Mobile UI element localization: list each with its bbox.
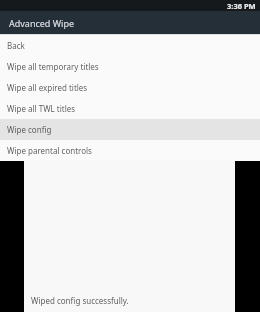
staticText: Wipe all TWL titles: [7, 103, 76, 114]
staticText: Wipe config: [7, 124, 52, 135]
staticText: Wipe all temporary titles: [7, 61, 99, 72]
button[interactable]: Wipe all temporary titles: [0, 56, 260, 77]
button[interactable]: Back: [0, 35, 260, 56]
staticText: 3:36 PM: [227, 1, 256, 11]
staticText: Wipe parental controls: [7, 145, 92, 156]
button[interactable]: Wipe config: [0, 119, 260, 140]
button[interactable]: Advanced Wipe: [0, 11, 260, 34]
staticText: Advanced Wipe: [9, 17, 75, 29]
staticText: Wiped config successfully.: [31, 295, 129, 306]
button[interactable]: Wipe all expired titles: [0, 77, 260, 98]
button[interactable]: Wipe all TWL titles: [0, 98, 260, 119]
button[interactable]: Wipe parental controls: [0, 140, 260, 161]
staticText: Wipe all expired titles: [7, 82, 88, 93]
staticText: Back: [7, 40, 25, 51]
